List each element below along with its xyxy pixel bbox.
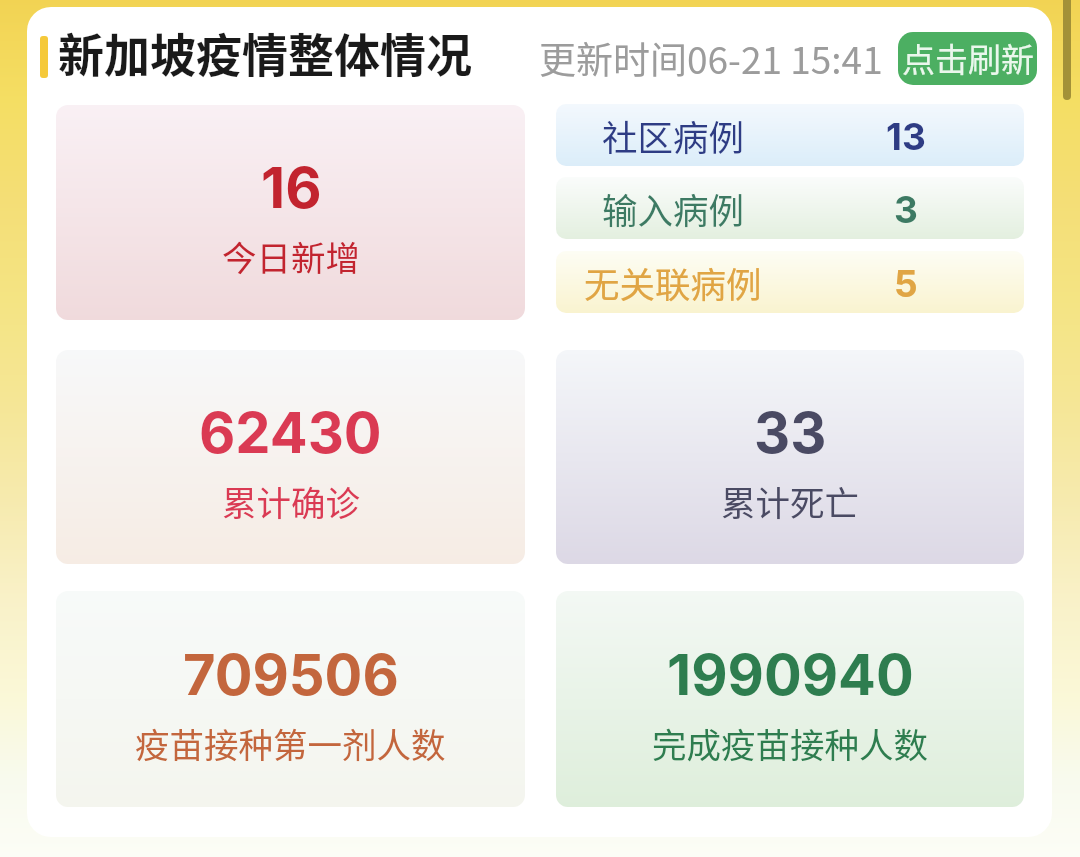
- staticText: 完成疫苗接种人数: [652, 718, 928, 768]
- staticText: 无关联病例: [584, 257, 762, 308]
- staticText: 709506: [183, 641, 399, 709]
- button[interactable]: 输入病例: [556, 177, 1024, 239]
- button[interactable]: 社区病例: [556, 104, 1024, 166]
- button[interactable]: 33: [556, 350, 1024, 564]
- button[interactable]: 709506: [56, 591, 525, 807]
- button[interactable]: 无关联病例: [556, 251, 1024, 313]
- button[interactable]: 16: [56, 105, 525, 320]
- staticText: 输入病例: [602, 183, 745, 234]
- staticText: 累计死亡: [721, 476, 859, 526]
- staticText: 更新时间06-21 15:41: [539, 31, 883, 85]
- staticText: 16: [261, 154, 322, 222]
- staticText: 3: [894, 187, 918, 232]
- staticText: 新加坡疫情整体情况: [58, 19, 472, 86]
- staticText: 13: [886, 114, 926, 159]
- staticText: 疫苗接种第一剂人数: [135, 718, 446, 768]
- staticText: 社区病例: [602, 110, 745, 161]
- staticText: 今日新增: [222, 231, 360, 281]
- staticText: 1990940: [667, 641, 914, 709]
- staticText: 点击刷新: [902, 34, 1034, 82]
- button[interactable]: 1990940: [556, 591, 1024, 807]
- button[interactable]: 点击刷新: [898, 32, 1037, 85]
- staticText: 5: [894, 261, 918, 306]
- button[interactable]: 62430: [56, 350, 525, 564]
- staticText: 累计确诊: [222, 476, 360, 526]
- staticText: 33: [754, 399, 827, 467]
- staticText: 62430: [199, 399, 382, 467]
